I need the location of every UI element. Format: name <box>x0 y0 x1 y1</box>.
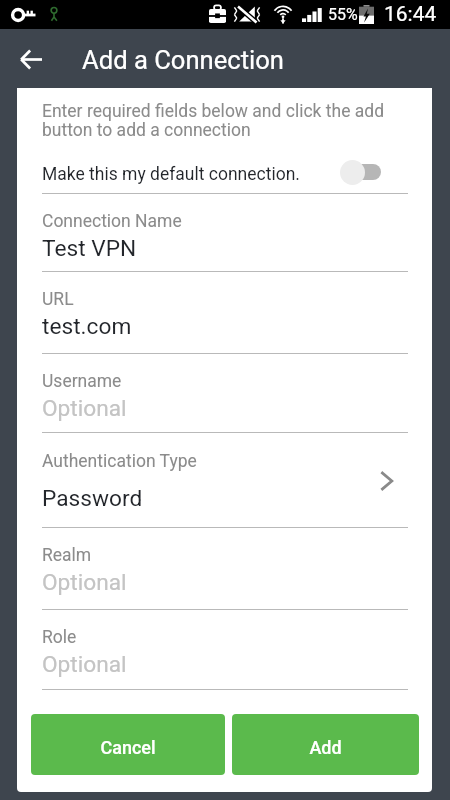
staticText: Username <box>42 371 122 392</box>
staticText: Make this my default connection. <box>42 164 300 185</box>
staticText: Authentication Type <box>42 451 197 472</box>
staticText: URL <box>42 289 74 310</box>
button[interactable]: Role <box>17 610 432 689</box>
staticText: Optional <box>42 569 127 596</box>
staticText: Password <box>42 485 143 512</box>
button[interactable]: Make this my default connection <box>331 157 381 187</box>
staticText: Role <box>42 627 77 648</box>
button[interactable]: Realm <box>17 528 432 609</box>
button[interactable]: Connection Name <box>17 194 432 271</box>
button[interactable]: Back <box>13 41 49 77</box>
staticText: test.com <box>42 313 132 340</box>
button[interactable]: Add <box>232 714 419 775</box>
button[interactable]: URL <box>17 272 432 353</box>
staticText: 16:44 <box>384 2 437 27</box>
staticText: Optional <box>42 395 127 422</box>
button[interactable]: Cancel <box>31 714 225 775</box>
staticText: 55% <box>328 5 358 24</box>
staticText: Connection Name <box>42 211 182 232</box>
staticText: Add <box>309 737 342 758</box>
staticText: Optional <box>42 651 127 678</box>
staticText: Test VPN <box>42 235 137 262</box>
staticText: Cancel <box>100 737 156 758</box>
button[interactable]: Username <box>17 354 432 432</box>
staticText: Enter required fields below and click th… <box>42 101 385 141</box>
staticText: Add a Connection <box>82 45 285 75</box>
staticText: Realm <box>42 545 92 566</box>
button[interactable]: Authentication Type <box>17 433 432 527</box>
